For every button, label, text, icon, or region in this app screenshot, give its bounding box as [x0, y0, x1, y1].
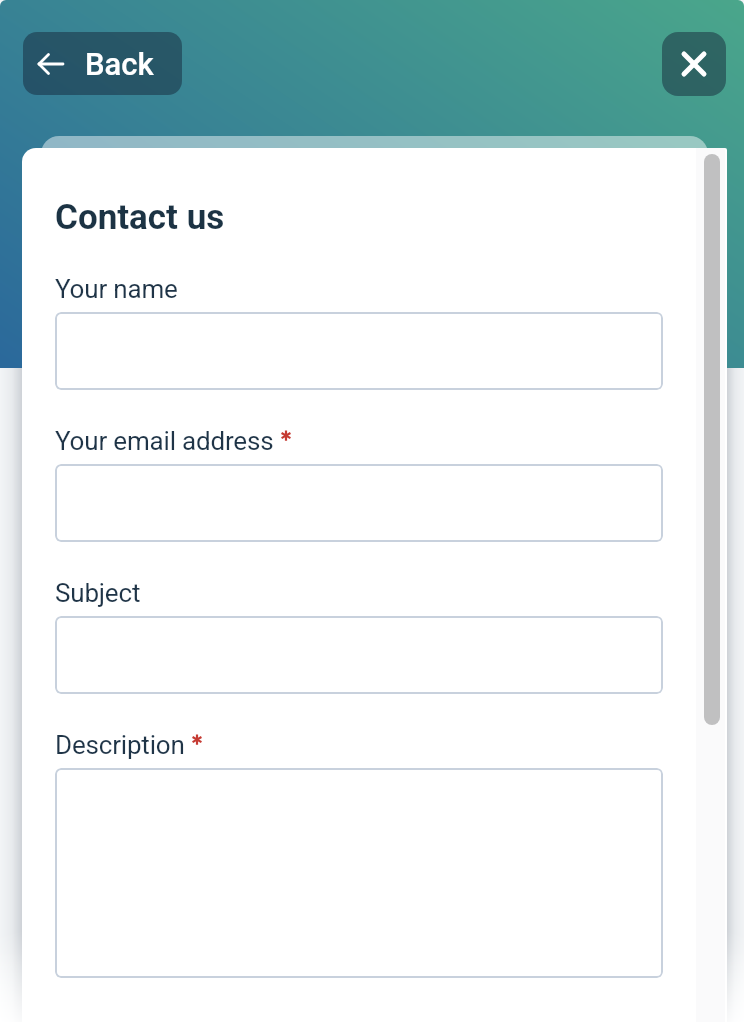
- staticText: Your email address: [55, 426, 274, 456]
- button[interactable]: Close: [662, 32, 726, 96]
- staticText: Back: [85, 46, 154, 82]
- button[interactable]: [55, 768, 663, 978]
- button[interactable]: Scroll: [704, 154, 720, 725]
- button[interactable]: [55, 464, 663, 542]
- staticText: Subject: [55, 578, 141, 608]
- button[interactable]: Back: [23, 32, 182, 95]
- staticText: Contact us: [55, 197, 225, 238]
- button[interactable]: [55, 616, 663, 694]
- button[interactable]: [55, 312, 663, 390]
- staticText: Description: [55, 730, 185, 760]
- staticText: Your name: [55, 274, 178, 304]
